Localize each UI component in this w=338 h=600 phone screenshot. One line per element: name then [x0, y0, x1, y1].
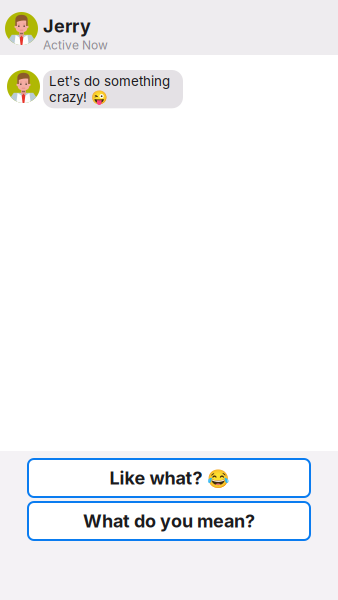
button[interactable]: Like what? 😂 — [28, 459, 310, 497]
staticText: What do you mean? — [83, 510, 255, 532]
staticText: Active Now — [43, 38, 108, 52]
staticText: Like what? 😂 — [109, 467, 228, 489]
staticText: Jerry — [43, 15, 91, 37]
button[interactable]: Jerry — [0, 0, 338, 55]
button[interactable]: What do you mean? — [28, 502, 310, 540]
staticText: Let's do something crazy! 😜 — [49, 73, 170, 105]
